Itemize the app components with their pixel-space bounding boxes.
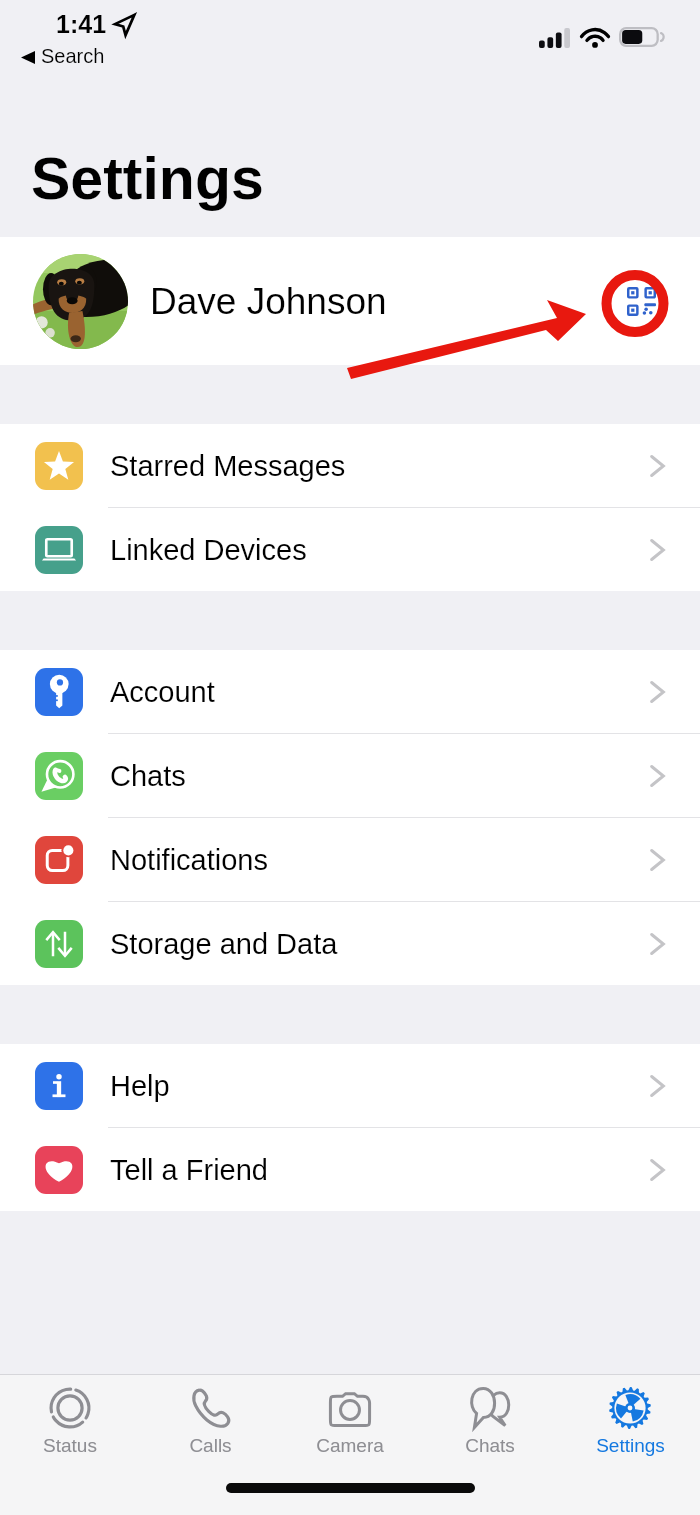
staticText: Storage and Data (110, 928, 338, 960)
staticText: Settings (596, 1435, 665, 1456)
button[interactable]: Status (0, 1375, 140, 1468)
button[interactable]: Notifications (0, 818, 700, 901)
staticText: Settings (31, 146, 264, 212)
staticText: Linked Devices (110, 534, 307, 566)
button[interactable]: Camera (280, 1375, 420, 1468)
staticText: Account (110, 676, 215, 708)
staticText: 1:41 (56, 10, 107, 38)
button[interactable]: Account (0, 650, 700, 733)
button[interactable]: Chats (420, 1375, 560, 1468)
staticText: Dave Johnson (150, 281, 387, 322)
staticText: Starred Messages (110, 450, 346, 482)
staticText: Calls (189, 1435, 232, 1456)
button[interactable]: Linked Devices (0, 508, 700, 591)
staticText: Notifications (110, 844, 268, 876)
button[interactable]: Dave Johnson (0, 237, 700, 365)
button[interactable]: Tell a Friend (0, 1128, 700, 1211)
button[interactable]: Settings (560, 1375, 700, 1468)
staticText: Chats (110, 760, 186, 792)
button[interactable]: Calls (140, 1375, 280, 1468)
button[interactable]: Storage and Data (0, 902, 700, 985)
staticText: Help (110, 1070, 170, 1102)
button[interactable]: QR code (618, 278, 664, 324)
button[interactable]: Chats (0, 734, 700, 817)
staticText: Search (41, 45, 105, 67)
button[interactable]: Help (0, 1044, 700, 1127)
staticText: Chats (465, 1435, 515, 1456)
staticText: Tell a Friend (110, 1154, 268, 1186)
staticText: Camera (316, 1435, 384, 1456)
button[interactable]: Starred Messages (0, 424, 700, 507)
staticText: Status (43, 1435, 97, 1456)
